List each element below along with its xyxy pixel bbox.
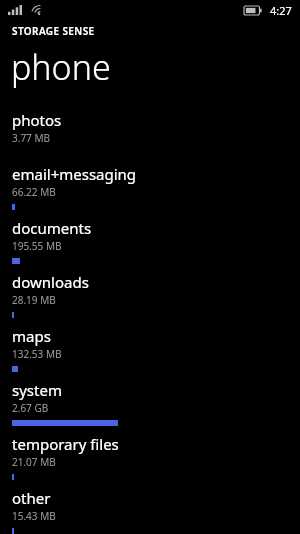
staticText: system — [12, 380, 62, 400]
staticText: 28.19 MB — [12, 293, 56, 307]
staticText: other — [12, 488, 51, 508]
button[interactable]: other — [0, 486, 300, 534]
button[interactable]: downloads — [0, 270, 300, 324]
button[interactable]: photos — [0, 108, 300, 162]
staticText: 195.55 MB — [12, 239, 62, 253]
button[interactable]: maps — [0, 324, 300, 378]
staticText: STORAGE SENSE — [12, 24, 95, 38]
staticText: downloads — [12, 272, 89, 292]
staticText: documents — [12, 218, 92, 238]
staticText: temporary files — [12, 434, 119, 454]
staticText: phone — [11, 44, 111, 90]
button[interactable]: documents — [0, 216, 300, 270]
button[interactable]: temporary files — [0, 432, 300, 486]
button[interactable]: email+messaging — [0, 162, 300, 216]
staticText: 21.07 MB — [12, 455, 56, 469]
staticText: 3.77 MB — [12, 131, 51, 145]
staticText: 2.67 GB — [12, 401, 49, 415]
staticText: maps — [12, 326, 51, 346]
button[interactable]: system — [0, 378, 300, 432]
staticText: 4:27 — [270, 3, 292, 18]
staticText: 132.53 MB — [12, 347, 62, 361]
staticText: 66.22 MB — [12, 185, 56, 199]
staticText: 15.43 MB — [12, 509, 56, 523]
staticText: email+messaging — [12, 164, 137, 184]
staticText: photos — [12, 110, 62, 130]
